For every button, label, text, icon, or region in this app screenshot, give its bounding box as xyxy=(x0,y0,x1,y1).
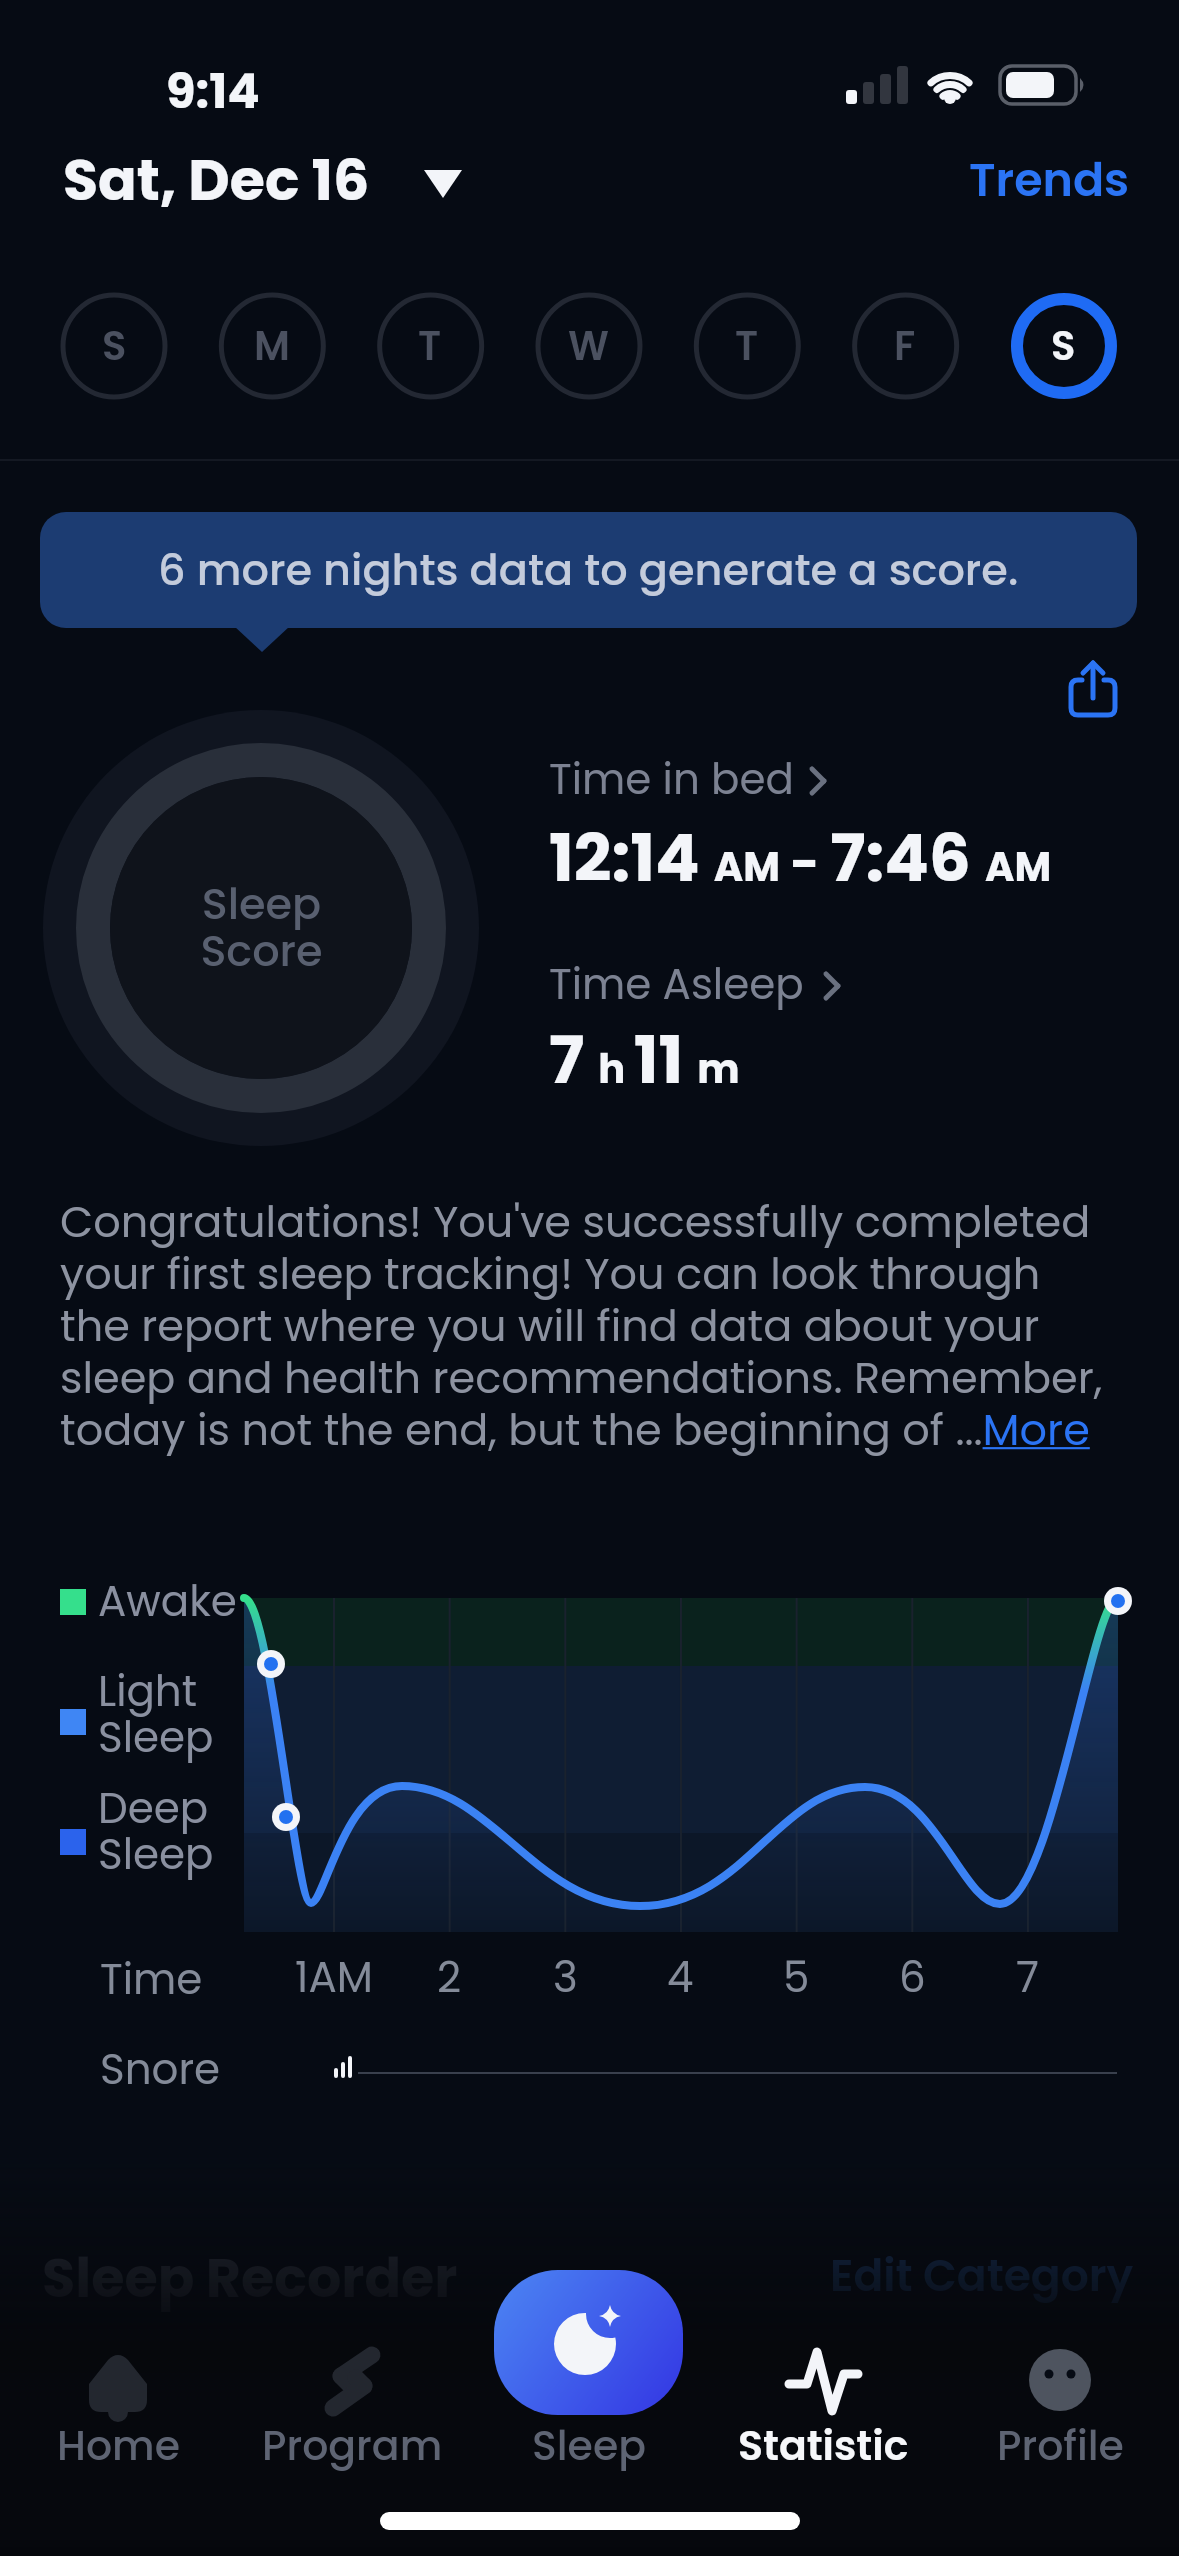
staticText: Sleep xyxy=(532,2417,646,2474)
staticText: 4 xyxy=(667,1948,694,2007)
staticText: T xyxy=(735,318,759,374)
button[interactable]: S xyxy=(1008,291,1118,401)
button[interactable]: T xyxy=(692,291,802,401)
staticText: Profile xyxy=(997,2417,1124,2474)
staticText: Program xyxy=(262,2417,443,2474)
staticText: Sleep Score xyxy=(200,874,323,982)
button[interactable]: Statistic xyxy=(728,2320,918,2485)
staticText: 9:14 xyxy=(166,58,260,125)
staticText: 1AM xyxy=(295,1948,373,2007)
button[interactable]: Edit Category xyxy=(830,2245,1150,2307)
staticText: Deep Sleep xyxy=(98,1779,214,1883)
button[interactable] xyxy=(494,2270,683,2415)
staticText: 6 more nights data to generate a score. xyxy=(158,540,1019,600)
staticText: Statistic xyxy=(738,2417,909,2474)
staticText: Sat, Dec 16 xyxy=(63,140,370,220)
button[interactable]: 6 more nights data to generate a score. xyxy=(40,512,1137,628)
button[interactable]: Trends xyxy=(950,145,1130,215)
staticText: Time xyxy=(100,1950,203,2009)
button[interactable]: T xyxy=(375,291,485,401)
staticText: Light Sleep xyxy=(98,1662,214,1766)
button[interactable]: Sat, Dec 16 xyxy=(55,140,475,220)
button[interactable]: Home xyxy=(23,2320,213,2485)
staticText: 12:14 AM - 7:46 AM xyxy=(549,812,1052,904)
button[interactable]: M xyxy=(217,291,327,401)
staticText: 7 xyxy=(1016,1948,1039,2007)
button[interactable]: F xyxy=(850,291,960,401)
staticText: Edit Category xyxy=(830,2245,1134,2307)
staticText: S xyxy=(1051,318,1076,374)
button[interactable] xyxy=(549,955,1109,1105)
staticText: Time Asleep xyxy=(549,955,804,1014)
staticText: 7 h 11 m xyxy=(549,1014,740,1106)
staticText: 6 xyxy=(899,1948,926,2007)
button[interactable]: Sleep xyxy=(494,2320,684,2485)
staticText: 3 xyxy=(553,1948,578,2007)
staticText: M xyxy=(254,318,290,374)
staticText: W xyxy=(568,318,609,374)
staticText: Time in bed xyxy=(549,750,794,809)
staticText: Snore xyxy=(100,2040,221,2099)
staticText: Trends xyxy=(969,148,1130,212)
staticText: Home xyxy=(57,2417,180,2474)
button[interactable]: Profile xyxy=(965,2320,1155,2485)
button[interactable]: Program xyxy=(257,2320,447,2485)
staticText: 2 xyxy=(437,1948,462,2007)
button[interactable]: Congratulations! You've successfully com… xyxy=(60,1192,1103,1460)
staticText: Sleep Recorder xyxy=(42,2240,458,2316)
button[interactable] xyxy=(549,750,1109,910)
staticText: F xyxy=(894,318,916,374)
staticText: Awake xyxy=(98,1572,237,1631)
button[interactable] xyxy=(1060,650,1130,726)
button[interactable]: S xyxy=(59,291,169,401)
staticText: T xyxy=(418,318,442,374)
button[interactable]: W xyxy=(533,291,643,401)
staticText: S xyxy=(102,318,127,374)
staticText: 5 xyxy=(783,1948,810,2007)
